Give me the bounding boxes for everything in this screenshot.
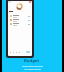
staticText: in a single place <box>24 68 41 71</box>
button[interactable] <box>8 22 32 26</box>
button[interactable] <box>8 14 32 18</box>
staticText: Track every expense <box>22 65 43 68</box>
button[interactable] <box>8 18 32 22</box>
staticText: Budget <box>24 58 40 64</box>
button[interactable]: Budget tab <box>26 51 30 53</box>
